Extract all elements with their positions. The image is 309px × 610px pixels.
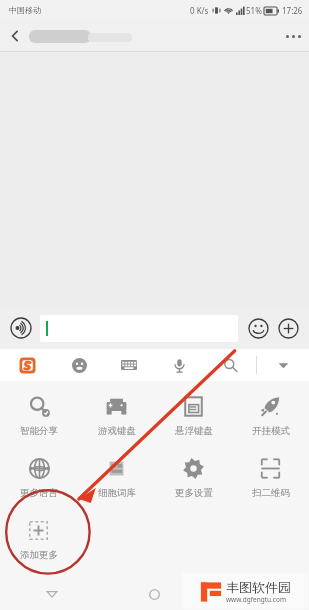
button[interactable]: 悬浮键盘 bbox=[155, 387, 232, 445]
button[interactable]: 更多语言 bbox=[0, 449, 78, 507]
staticText: 智能分享 bbox=[20, 425, 58, 437]
button[interactable]: More bbox=[275, 315, 301, 341]
button[interactable]: Home bbox=[103, 578, 206, 610]
button[interactable]: Back bbox=[0, 578, 103, 610]
button[interactable]: Collapse keyboard bbox=[257, 349, 309, 381]
staticText: 17:26 bbox=[282, 5, 303, 16]
button[interactable]: More options bbox=[277, 20, 309, 52]
staticText: 0 K/s bbox=[190, 5, 209, 16]
button[interactable] bbox=[40, 315, 238, 342]
button[interactable]: 细胞词库 bbox=[78, 449, 155, 507]
staticText: 悬浮键盘 bbox=[175, 425, 213, 437]
staticText: 丰图软件园 bbox=[226, 579, 291, 595]
staticText: 扫二维码 bbox=[252, 487, 290, 499]
staticText: 中国移动 bbox=[9, 5, 41, 15]
staticText: 更多设置 bbox=[175, 487, 213, 499]
staticText: 51% bbox=[246, 5, 262, 16]
button[interactable]: 扫二维码 bbox=[232, 449, 309, 507]
button[interactable]: Voice input bbox=[8, 315, 34, 341]
button[interactable]: Search bbox=[205, 349, 256, 381]
staticText: 开挂模式 bbox=[252, 425, 290, 437]
button[interactable]: Sogou input bbox=[0, 349, 54, 381]
staticText: 添加更多 bbox=[20, 549, 58, 561]
button[interactable]: Emoji bbox=[245, 315, 271, 341]
button[interactable]: Recents bbox=[206, 578, 309, 610]
button[interactable]: Back bbox=[0, 21, 30, 51]
button[interactable]: 添加更多 bbox=[0, 511, 77, 569]
staticText: 游戏键盘 bbox=[98, 425, 136, 437]
button[interactable]: 开挂模式 bbox=[232, 387, 309, 445]
button[interactable]: Voice bbox=[154, 349, 205, 381]
button[interactable]: 更多设置 bbox=[155, 449, 232, 507]
button[interactable]: Expressions bbox=[54, 349, 104, 381]
staticText: 更多语言 bbox=[20, 487, 58, 499]
staticText: 细胞词库 bbox=[98, 487, 136, 499]
staticText: www.dgfengtu.com bbox=[226, 595, 286, 604]
button[interactable]: 游戏键盘 bbox=[78, 387, 155, 445]
button[interactable]: Keyboard bbox=[104, 349, 154, 381]
button[interactable]: 智能分享 bbox=[0, 387, 78, 445]
